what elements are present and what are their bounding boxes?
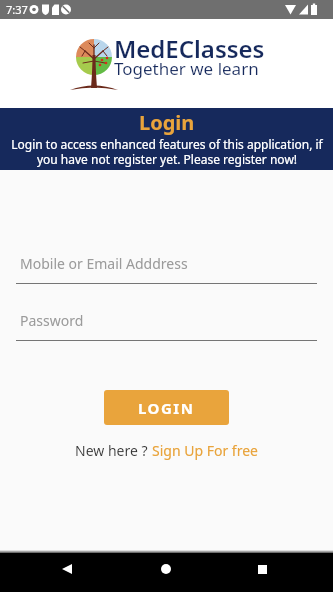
staticText: LOGIN <box>138 398 195 418</box>
button[interactable] <box>243 550 281 588</box>
button[interactable]: Mobile or Email Adddress <box>16 254 317 284</box>
staticText: Login to access enhanced features of thi… <box>11 136 323 167</box>
button[interactable]: LOGIN <box>104 390 229 425</box>
staticText: Mobile or Email Adddress <box>20 254 188 273</box>
staticText: Together we learn <box>114 57 259 80</box>
staticText: Login <box>139 109 195 136</box>
button[interactable] <box>48 550 86 588</box>
button[interactable]: Sign Up For free <box>152 441 258 460</box>
button[interactable] <box>147 550 185 588</box>
staticText: Password <box>20 311 84 330</box>
staticText: 7:37 <box>6 2 28 17</box>
button[interactable]: Password <box>16 311 317 341</box>
staticText: MedEClasses <box>114 32 265 65</box>
staticText: New here ? <box>75 441 152 460</box>
